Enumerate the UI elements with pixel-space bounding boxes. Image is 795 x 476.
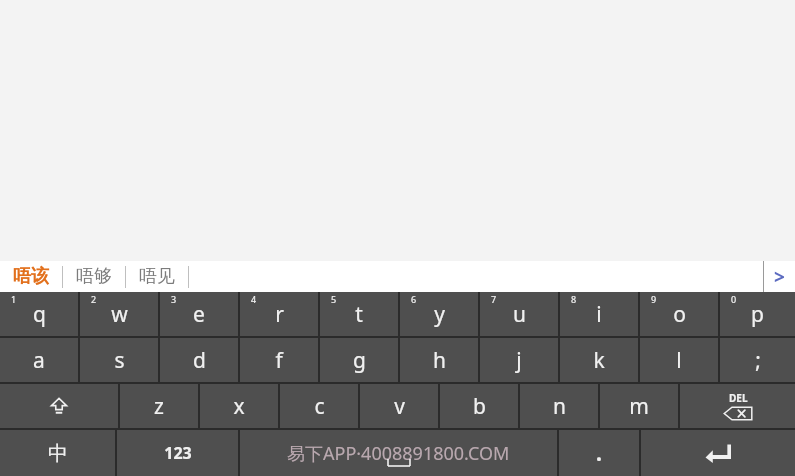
button[interactable]: Shift xyxy=(0,384,118,428)
staticText: 0 xyxy=(731,293,737,305)
staticText: 123 xyxy=(164,442,192,464)
staticText: 7 xyxy=(491,293,497,305)
staticText: d xyxy=(193,346,206,375)
staticText: w xyxy=(111,300,128,329)
button[interactable]: o xyxy=(640,292,718,336)
button[interactable]: w xyxy=(80,292,158,336)
button[interactable]: j xyxy=(480,338,558,382)
staticText: o xyxy=(673,300,686,329)
button[interactable]: More candidates xyxy=(764,261,795,292)
button[interactable]: m xyxy=(600,384,678,428)
staticText: g xyxy=(353,346,366,375)
staticText: DEL xyxy=(729,391,748,405)
staticText: a xyxy=(33,346,45,375)
staticText: 易下APP·4008891800.COM xyxy=(287,441,510,466)
button[interactable]: r xyxy=(240,292,318,336)
button[interactable]: c xyxy=(280,384,358,428)
button[interactable]: t xyxy=(320,292,398,336)
staticText: y xyxy=(434,300,445,329)
staticText: 3 xyxy=(171,293,177,305)
staticText: j xyxy=(516,346,522,375)
button[interactable]: 唔够 xyxy=(63,261,125,292)
staticText: 1 xyxy=(11,293,17,305)
staticText: s xyxy=(114,346,125,375)
staticText: n xyxy=(553,392,566,421)
button[interactable]: l xyxy=(640,338,718,382)
staticText: i xyxy=(596,300,602,329)
button[interactable]: z xyxy=(120,384,198,428)
staticText: c xyxy=(314,392,325,421)
button[interactable]: 123 xyxy=(117,430,238,476)
button[interactable]: . xyxy=(559,430,639,476)
button[interactable]: g xyxy=(320,338,398,382)
staticText: b xyxy=(473,392,486,421)
staticText: 唔够 xyxy=(76,265,112,288)
staticText: 中 xyxy=(48,441,68,466)
staticText: . xyxy=(596,439,602,468)
button[interactable]: b xyxy=(440,384,518,428)
button[interactable]: n xyxy=(520,384,598,428)
button[interactable]: 中 xyxy=(0,430,115,476)
staticText: f xyxy=(275,346,283,375)
staticText: l xyxy=(676,346,682,375)
button[interactable]: a xyxy=(0,338,78,382)
button[interactable]: Enter xyxy=(641,430,795,476)
staticText: 唔见 xyxy=(139,265,175,288)
staticText: t xyxy=(355,300,363,329)
staticText: r xyxy=(275,300,284,329)
button[interactable]: y xyxy=(400,292,478,336)
staticText: 9 xyxy=(651,293,657,305)
staticText: q xyxy=(33,300,46,329)
button[interactable]: i xyxy=(560,292,638,336)
button[interactable]: 唔见 xyxy=(126,261,188,292)
staticText: 2 xyxy=(91,293,97,305)
staticText: p xyxy=(751,300,764,329)
button[interactable]: h xyxy=(400,338,478,382)
button[interactable]: k xyxy=(560,338,638,382)
button[interactable]: p xyxy=(720,292,795,336)
staticText: k xyxy=(593,346,605,375)
staticText: 唔该 xyxy=(13,265,49,288)
staticText: 8 xyxy=(571,293,577,305)
button[interactable]: d xyxy=(160,338,238,382)
staticText: x xyxy=(233,392,245,421)
button[interactable]: ; xyxy=(720,338,795,382)
button[interactable]: x xyxy=(200,384,278,428)
button[interactable]: q xyxy=(0,292,78,336)
staticText: e xyxy=(193,300,205,329)
button[interactable]: f xyxy=(240,338,318,382)
staticText: 6 xyxy=(411,293,417,305)
staticText: 5 xyxy=(331,293,337,305)
button[interactable]: Space xyxy=(240,430,557,476)
staticText: z xyxy=(154,392,164,421)
staticText: u xyxy=(513,300,526,329)
staticText: ; xyxy=(755,346,761,375)
staticText: h xyxy=(433,346,446,375)
button[interactable]: v xyxy=(360,384,438,428)
button[interactable]: s xyxy=(80,338,158,382)
staticText: 4 xyxy=(251,293,257,305)
staticText: v xyxy=(394,392,405,421)
button[interactable]: e xyxy=(160,292,238,336)
button[interactable]: Delete xyxy=(680,384,795,428)
button[interactable]: 唔该 xyxy=(0,261,62,292)
staticText: > xyxy=(774,264,785,290)
button[interactable]: u xyxy=(480,292,558,336)
staticText: m xyxy=(629,392,649,421)
